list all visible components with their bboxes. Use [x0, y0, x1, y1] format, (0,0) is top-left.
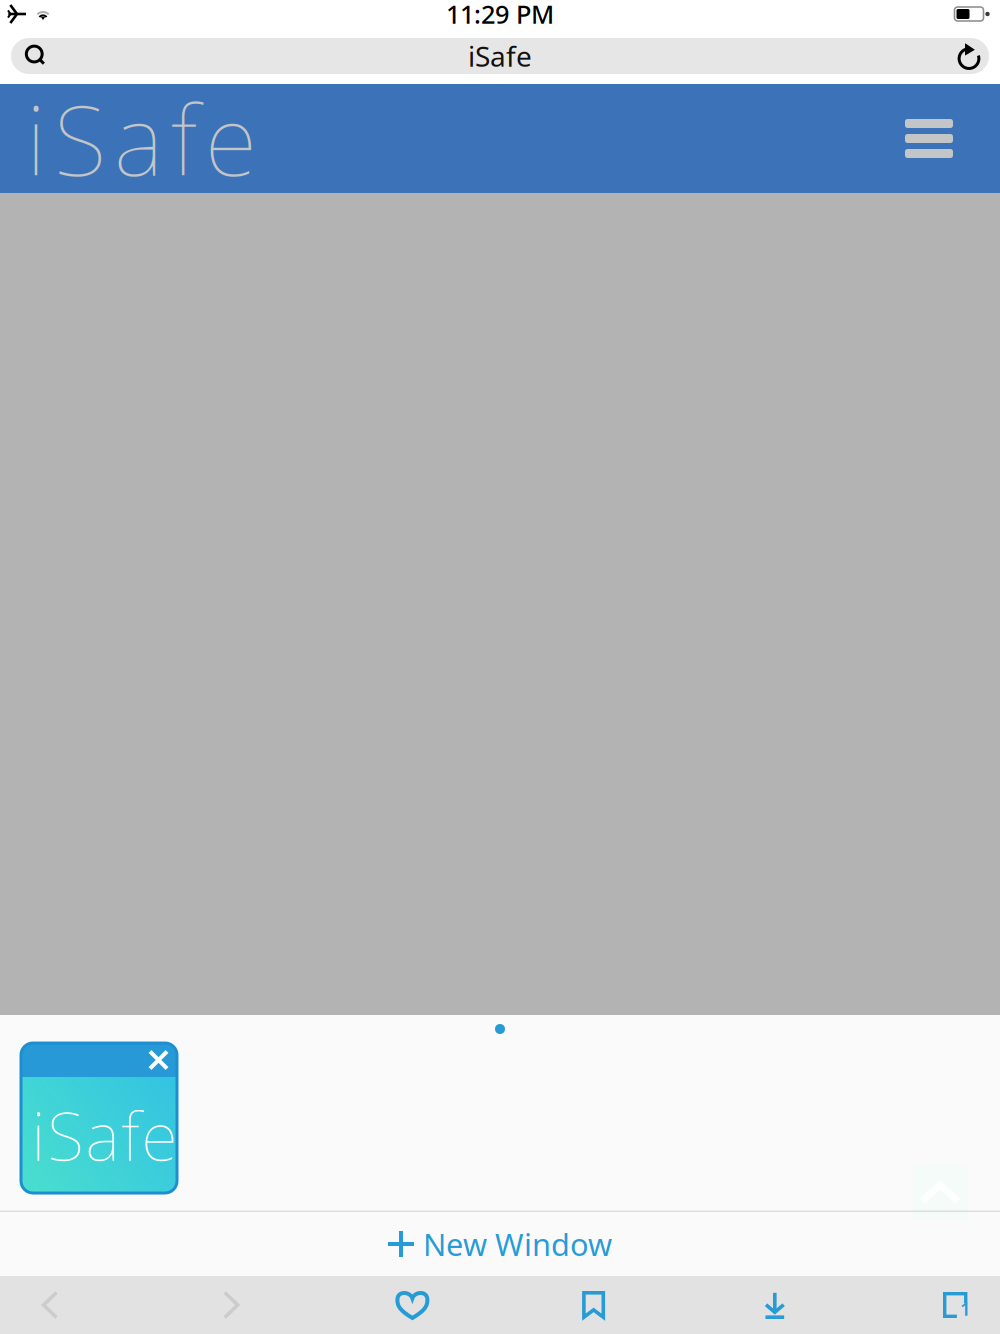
staticText: iSafe [468, 37, 532, 75]
button[interactable]: Forward [191, 1276, 271, 1334]
button[interactable]: Favorites [372, 1276, 452, 1334]
button[interactable]: Menu [892, 100, 966, 176]
staticText: New Window [423, 1224, 612, 1264]
button[interactable]: iSafe [0, 28, 1000, 84]
button[interactable]: Downloads [735, 1276, 815, 1334]
button[interactable]: Back [10, 1276, 90, 1334]
button[interactable]: Bookmarks [554, 1276, 634, 1334]
staticText: iSafe [31, 1091, 177, 1179]
staticText: 1 [960, 1296, 971, 1321]
staticText: iSafe [26, 75, 257, 202]
button[interactable]: Tabs [916, 1276, 996, 1334]
staticText: 11:29 PM [446, 0, 554, 31]
button[interactable]: iSafe [21, 1043, 177, 1193]
button[interactable]: New Window [0, 1212, 1000, 1276]
